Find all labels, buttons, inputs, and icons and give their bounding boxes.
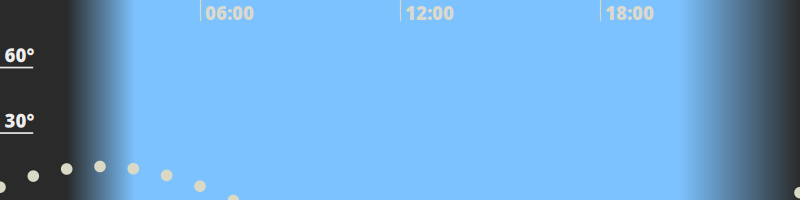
staticText: 30° (4, 108, 34, 133)
staticText: 18:00 (605, 0, 654, 25)
staticText: 12:00 (405, 0, 454, 25)
staticText: 60° (4, 42, 34, 67)
staticText: 06:00 (205, 0, 254, 25)
